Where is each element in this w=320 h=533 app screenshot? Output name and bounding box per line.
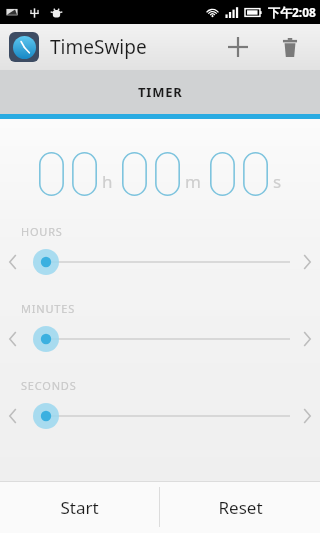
staticText: Start <box>60 496 99 519</box>
staticText: SECONDS <box>21 378 77 393</box>
button[interactable] <box>26 401 294 431</box>
button[interactable]: Decrease HOURS <box>0 247 26 277</box>
button[interactable]: Decrease MINUTES <box>0 324 26 354</box>
staticText: TIMER <box>138 83 183 101</box>
staticText: TimeSwipe <box>50 34 147 60</box>
staticText: MINUTES <box>21 301 75 316</box>
button[interactable]: Increase MINUTES <box>294 324 320 354</box>
button[interactable]: Start <box>0 481 159 533</box>
button[interactable]: Reset <box>160 481 320 533</box>
button[interactable]: TIMER <box>0 70 320 114</box>
staticText: h <box>102 170 113 193</box>
staticText: 下午2:08 <box>268 4 316 20</box>
staticText: Reset <box>218 496 263 519</box>
button[interactable]: Increase HOURS <box>294 247 320 277</box>
staticText: s <box>273 170 282 193</box>
button[interactable]: Add timer <box>216 25 260 69</box>
staticText: m <box>185 170 201 193</box>
button[interactable] <box>26 324 294 354</box>
button[interactable]: Delete <box>268 25 312 69</box>
button[interactable] <box>26 247 294 277</box>
button[interactable]: Increase SECONDS <box>294 401 320 431</box>
staticText: HOURS <box>21 224 63 239</box>
button[interactable] <box>9 32 39 62</box>
button[interactable]: Decrease SECONDS <box>0 401 26 431</box>
